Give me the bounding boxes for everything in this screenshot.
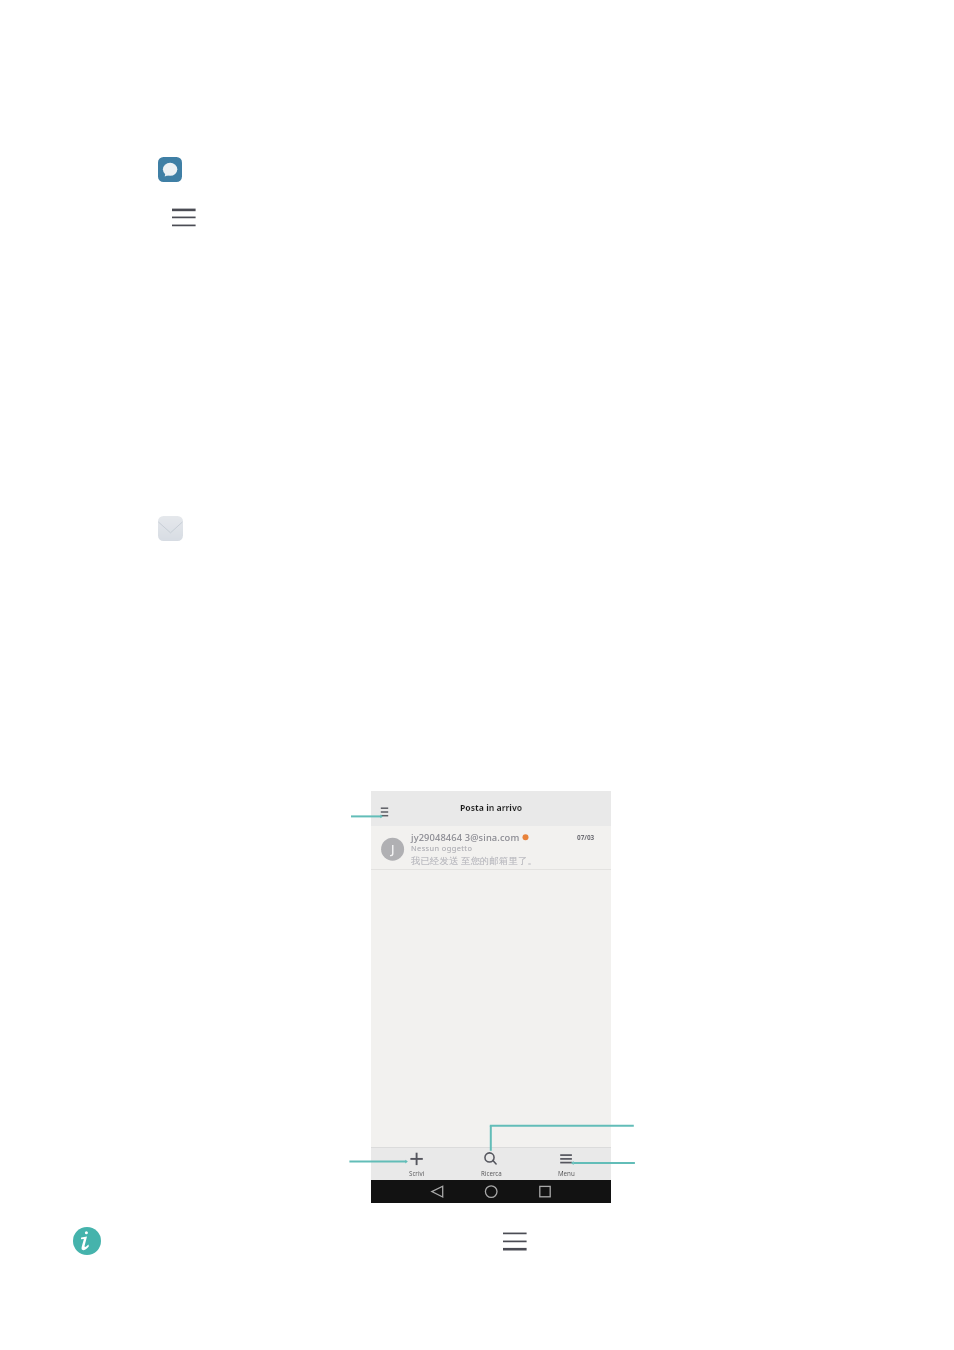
- staticText: Ricerca: [481, 1169, 502, 1177]
- staticText: 我已经发送 至您的邮箱里了。: [411, 854, 538, 867]
- button[interactable]: [371, 1148, 451, 1180]
- button[interactable]: [451, 1148, 531, 1180]
- button[interactable]: Home: [481, 1182, 503, 1202]
- staticText: J: [391, 841, 395, 857]
- staticText: jy29048464 3@sina.com: [411, 831, 520, 844]
- staticText: 07/03: [577, 833, 595, 842]
- staticText: Posta in arrivo: [460, 802, 523, 814]
- staticText: Scrivi: [409, 1169, 425, 1177]
- button[interactable]: Ricerca: [469, 1167, 513, 1179]
- button[interactable]: [371, 826, 611, 869]
- staticText: Nessun oggetto: [411, 843, 473, 853]
- button[interactable]: Menu: [544, 1167, 588, 1179]
- button[interactable]: Info: [73, 1227, 101, 1255]
- button[interactable]: Menu: [503, 1229, 527, 1252]
- button[interactable]: Menu: [172, 205, 196, 230]
- button[interactable]: Menu: [376, 801, 394, 823]
- button[interactable]: Recent apps: [534, 1182, 556, 1202]
- button[interactable]: Scrivi: [395, 1167, 439, 1179]
- button[interactable]: Back: [427, 1182, 449, 1202]
- button[interactable]: Email app: [158, 516, 183, 541]
- staticText: Menu: [558, 1169, 575, 1177]
- button[interactable]: Messages app: [158, 157, 182, 182]
- button[interactable]: [531, 1148, 611, 1180]
